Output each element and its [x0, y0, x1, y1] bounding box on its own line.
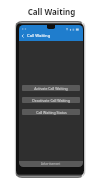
staticText: Call Waiting — [27, 33, 51, 39]
staticText: Call Waiting — [0, 6, 103, 17]
button[interactable]: Back — [20, 33, 26, 39]
staticText: Call Waiting Status — [36, 110, 67, 115]
button[interactable]: Deactivate Call Waiting — [22, 97, 80, 103]
staticText: Activate Call Waiting — [34, 86, 68, 91]
staticText: Deactivate Call Waiting — [32, 98, 70, 103]
button[interactable]: Activate Call Waiting — [22, 85, 80, 91]
button[interactable]: Advertisement — [19, 161, 83, 167]
button[interactable]: Call Waiting Status — [22, 109, 80, 115]
staticText: Advertisement — [41, 162, 61, 166]
